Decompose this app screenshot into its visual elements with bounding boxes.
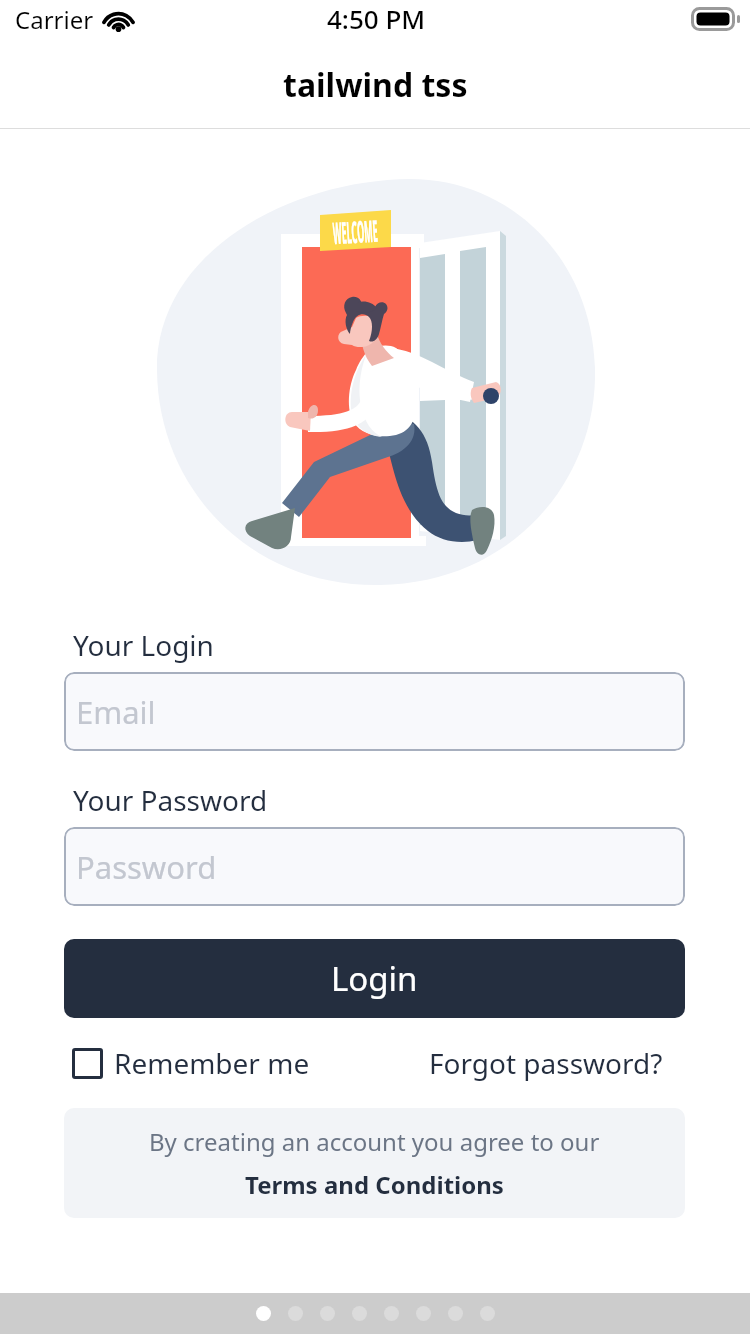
- button[interactable]: Login: [64, 939, 685, 1018]
- button[interactable]: Email: [64, 672, 685, 751]
- staticText: Remember me: [114, 1044, 310, 1082]
- staticText: Email: [76, 691, 156, 733]
- staticText: Login: [331, 956, 418, 1001]
- button[interactable]: Password: [64, 827, 685, 906]
- staticText: WELCOME: [331, 210, 378, 246]
- staticText: Carrier: [15, 3, 94, 36]
- staticText: By creating an account you agree to our: [149, 1125, 600, 1158]
- staticText: Your Password: [73, 781, 268, 819]
- button[interactable]: By creating an account you agree to our: [64, 1108, 685, 1218]
- staticText: Terms and Conditions: [245, 1168, 504, 1201]
- button[interactable]: Remember me: [64, 1044, 310, 1082]
- staticText: tailwind tss: [283, 63, 468, 107]
- staticText: Password: [76, 846, 217, 888]
- staticText: Your Login: [73, 626, 214, 664]
- staticText: 4:50 PM: [327, 1, 426, 36]
- button[interactable]: Forgot password?: [429, 1044, 685, 1082]
